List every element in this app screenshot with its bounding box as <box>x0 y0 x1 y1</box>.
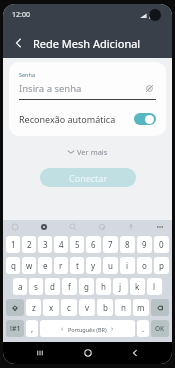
button[interactable]: 6 <box>86 236 101 253</box>
button[interactable]: b <box>97 299 113 316</box>
button[interactable]: p <box>154 257 169 274</box>
button[interactable]: 2 <box>22 236 36 253</box>
staticText: r <box>59 260 63 271</box>
staticText: o <box>142 260 147 271</box>
button[interactable]: !#1 <box>6 320 24 337</box>
button[interactable]: w <box>22 257 36 274</box>
staticText: , <box>31 323 34 334</box>
button[interactable]: u <box>103 257 118 274</box>
button[interactable]: z <box>26 299 41 316</box>
staticText: 2 <box>27 239 32 250</box>
staticText: 1 <box>11 239 16 250</box>
staticText: p <box>159 260 164 271</box>
staticText: n <box>121 302 126 313</box>
staticText: OK <box>155 324 165 333</box>
staticText: j <box>119 281 122 292</box>
staticText: w <box>26 260 33 271</box>
staticText: ‹ <box>61 324 64 334</box>
button[interactable]: j <box>113 278 128 295</box>
button[interactable]: Ver mais <box>60 144 116 160</box>
staticText: Senha <box>19 71 36 78</box>
staticText: Conectar <box>69 172 108 184</box>
button[interactable]: Recents <box>30 343 50 363</box>
button[interactable]: Reconexão automática <box>19 113 156 125</box>
button[interactable]: Search <box>67 221 79 233</box>
button[interactable]: . <box>137 320 149 337</box>
staticText: 0 <box>159 239 164 250</box>
button[interactable]: x <box>43 299 59 316</box>
button[interactable]: 7 <box>103 236 118 253</box>
staticText: Português (BR) <box>68 326 107 333</box>
button[interactable]: More options <box>154 221 166 233</box>
button[interactable]: Home <box>78 343 98 363</box>
button[interactable]: y <box>86 257 101 274</box>
staticText: m <box>137 302 145 313</box>
staticText: q <box>11 260 16 271</box>
staticText: b <box>103 302 108 313</box>
button[interactable]: Emoji <box>9 221 21 233</box>
staticText: a <box>18 281 23 292</box>
button[interactable]: Backspace <box>151 299 169 316</box>
button[interactable]: 8 <box>120 236 135 253</box>
button[interactable]: 9 <box>137 236 152 253</box>
staticText: y <box>91 260 96 271</box>
staticText: 7 <box>108 239 113 250</box>
staticText: Insira a senha <box>19 82 82 95</box>
button[interactable]: g <box>79 278 94 295</box>
button[interactable]: h <box>96 278 111 295</box>
button[interactable]: a <box>13 278 27 295</box>
button[interactable]: t <box>70 257 84 274</box>
button[interactable]: Back <box>12 36 26 50</box>
staticText: 3 <box>43 239 48 250</box>
button[interactable]: n <box>115 299 131 316</box>
staticText: v <box>85 302 90 313</box>
button[interactable]: Conectar <box>40 168 136 187</box>
button[interactable]: Voice input <box>125 221 137 233</box>
staticText: x <box>49 302 54 313</box>
button[interactable]: Show password <box>142 81 156 95</box>
button[interactable]: v <box>79 299 95 316</box>
button[interactable]: m <box>133 299 149 316</box>
staticText: 8 <box>125 239 130 250</box>
button[interactable]: q <box>6 257 20 274</box>
staticText: 6 <box>91 239 96 250</box>
staticText: Rede Mesh Adicional <box>33 36 141 51</box>
button[interactable]: Stickers <box>96 221 108 233</box>
button[interactable]: 1 <box>6 236 20 253</box>
button[interactable]: Insira a senha <box>19 81 156 95</box>
button[interactable]: Back <box>125 343 145 363</box>
button[interactable]: f <box>62 278 77 295</box>
button[interactable]: Shift <box>6 299 24 316</box>
button[interactable]: Settings <box>38 221 50 233</box>
button[interactable]: d <box>45 278 60 295</box>
button[interactable]: 0 <box>154 236 169 253</box>
button[interactable]: i <box>120 257 135 274</box>
staticText: 12:00 <box>12 10 30 20</box>
button[interactable]: o <box>137 257 152 274</box>
staticText: l <box>153 281 156 292</box>
button[interactable]: k <box>130 278 145 295</box>
button[interactable]: l <box>147 278 162 295</box>
button[interactable]: ‹ <box>40 320 135 337</box>
button[interactable]: c <box>61 299 77 316</box>
staticText: Ver mais <box>77 147 108 157</box>
staticText: 4 <box>59 239 64 250</box>
staticText: s <box>34 281 38 292</box>
staticText: 5 <box>75 239 80 250</box>
button[interactable]: 4 <box>54 236 68 253</box>
button[interactable]: OK <box>151 320 169 337</box>
staticText: d <box>50 281 55 292</box>
button[interactable]: s <box>29 278 43 295</box>
staticText: Reconexão automática <box>19 113 116 125</box>
button[interactable]: 3 <box>38 236 52 253</box>
button[interactable]: r <box>54 257 68 274</box>
staticText: e <box>43 260 48 271</box>
staticText: c <box>67 302 71 313</box>
staticText: u <box>108 260 113 271</box>
staticText: k <box>135 281 140 292</box>
button[interactable]: e <box>38 257 52 274</box>
staticText: › <box>111 324 114 334</box>
button[interactable]: , <box>26 320 38 337</box>
staticText: h <box>101 281 106 292</box>
button[interactable]: 5 <box>70 236 84 253</box>
